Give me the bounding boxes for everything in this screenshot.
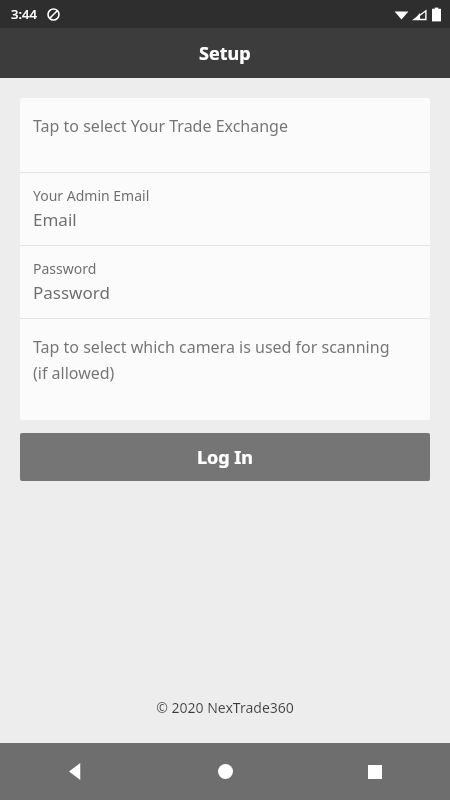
button[interactable]: Your Admin Email [20,173,430,245]
staticText: Tap to select Your Trade Exchange [33,115,288,137]
button[interactable]: Recents [300,743,450,800]
staticText: Setup [199,41,251,66]
staticText: Password [33,281,110,304]
button[interactable]: Tap to select which camera is used for s… [20,319,430,420]
staticText: Your Admin Email [33,186,150,205]
staticText: Email [33,208,77,231]
button[interactable]: Tap to select Your Trade Exchange [20,98,430,172]
staticText: Password [33,259,97,278]
button[interactable]: Home [150,743,300,800]
staticText: Tap to select which camera is used for s… [33,336,404,384]
staticText: © 2020 NexTrade360 [0,698,450,717]
button[interactable]: Log In [20,433,430,481]
button[interactable]: Password [20,246,430,318]
button[interactable]: Back [0,743,150,800]
staticText: 3:44 [11,5,37,23]
staticText: Log In [197,445,254,470]
